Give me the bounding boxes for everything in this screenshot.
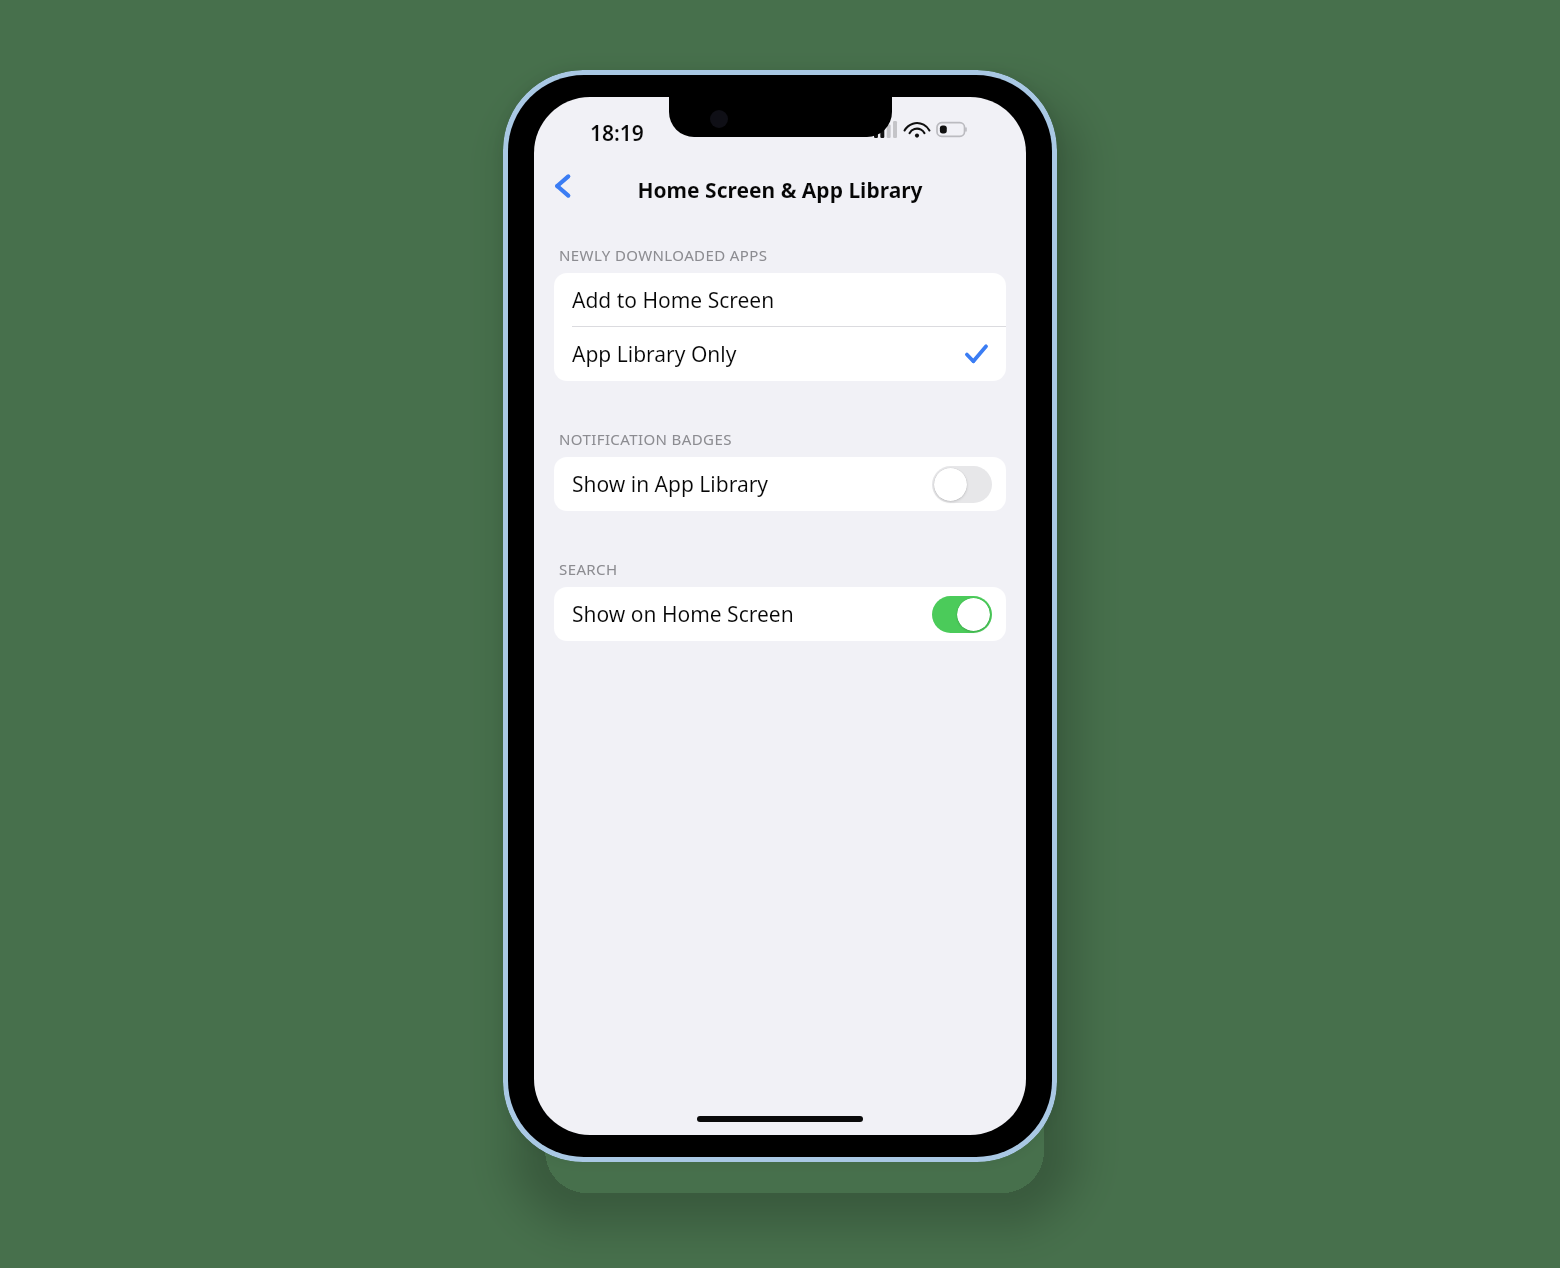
staticText: NEWLY DOWNLOADED APPS — [559, 245, 768, 265]
button[interactable]: Add to Home Screen — [554, 273, 1006, 327]
staticText: SEARCH — [559, 559, 618, 579]
button[interactable]: App Library Only — [554, 327, 1006, 381]
staticText: Show on Home Screen — [572, 600, 794, 629]
button[interactable]: Show in App Library — [554, 457, 1006, 511]
staticText: Show in App Library — [572, 470, 769, 499]
staticText: App Library Only — [572, 340, 737, 369]
staticText: 18:19 — [590, 119, 644, 148]
staticText: Home Screen & App Library — [637, 176, 923, 205]
button[interactable]: Off — [932, 466, 992, 503]
button[interactable]: Show on Home Screen — [554, 587, 1006, 641]
button[interactable]: On — [932, 596, 992, 633]
button[interactable]: Back — [536, 159, 590, 213]
staticText: Add to Home Screen — [572, 286, 775, 315]
staticText: NOTIFICATION BADGES — [559, 429, 732, 449]
